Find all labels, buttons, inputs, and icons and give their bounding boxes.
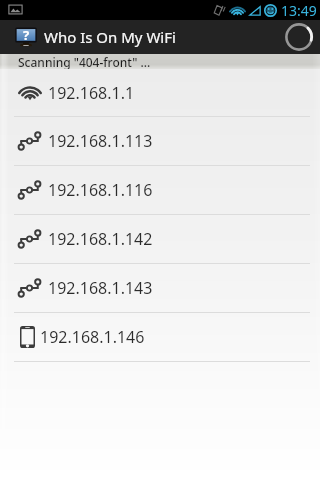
- staticText: ?: [23, 26, 30, 44]
- staticText: 13:49: [281, 1, 317, 20]
- staticText: 192.168.1.146: [40, 326, 145, 348]
- button[interactable]: 192.168.1.1: [0, 69, 320, 116]
- staticText: 192.168.1.113: [48, 130, 153, 152]
- staticText: Who Is On My WiFi: [44, 27, 176, 47]
- button[interactable]: 192.168.1.146: [0, 313, 320, 361]
- button[interactable]: 192.168.1.142: [0, 215, 320, 263]
- staticText: Scanning "404-front" ...: [18, 54, 151, 69]
- other: Scanning in progress: [283, 21, 315, 53]
- staticText: 192.168.1.142: [48, 228, 153, 250]
- staticText: 192.168.1.1: [48, 82, 135, 104]
- staticText: 192.168.1.116: [48, 179, 153, 201]
- button[interactable]: 192.168.1.143: [0, 264, 320, 312]
- staticText: 192.168.1.143: [48, 277, 153, 299]
- button[interactable]: 192.168.1.113: [0, 117, 320, 165]
- button[interactable]: 192.168.1.116: [0, 166, 320, 214]
